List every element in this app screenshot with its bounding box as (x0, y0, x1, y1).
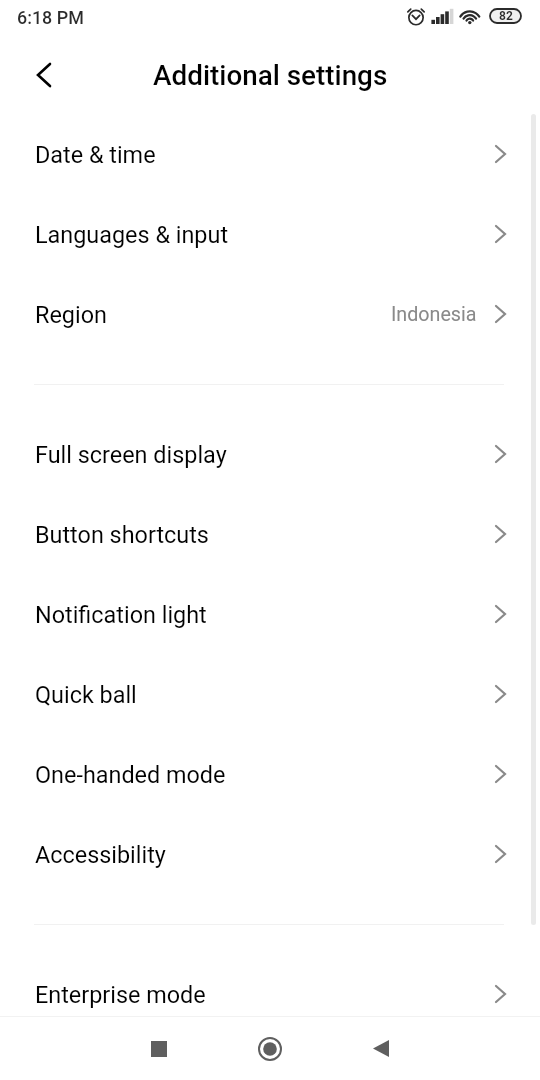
button[interactable]: One-handed mode (0, 734, 540, 814)
button[interactable]: Recents (103, 1017, 215, 1080)
staticText: Notification light (35, 601, 207, 628)
button[interactable]: Back (325, 1017, 437, 1080)
staticText: Additional settings (153, 59, 388, 92)
staticText: Button shortcuts (35, 521, 209, 548)
button[interactable]: Home (215, 1017, 325, 1080)
staticText: Full screen display (35, 441, 227, 468)
staticText: Quick ball (35, 681, 137, 708)
staticText: One-handed mode (35, 761, 226, 788)
button[interactable]: Date & time (0, 114, 540, 194)
button[interactable]: Notification light (0, 574, 540, 654)
staticText: Indonesia (391, 303, 477, 326)
button[interactable]: Accessibility (0, 814, 540, 894)
staticText: 6:18 PM (17, 7, 84, 28)
button[interactable]: Region (0, 274, 540, 354)
button[interactable]: Back (16, 47, 72, 103)
staticText: 82 (499, 9, 513, 23)
staticText: Region (35, 301, 107, 328)
staticText: Accessibility (35, 841, 166, 868)
button[interactable]: Enterprise mode (0, 954, 540, 1020)
button[interactable]: Full screen display (0, 414, 540, 494)
button[interactable]: Languages & input (0, 194, 540, 274)
staticText: Date & time (35, 141, 156, 168)
staticText: Languages & input (35, 221, 229, 248)
staticText: Enterprise mode (35, 981, 206, 1008)
button[interactable]: Quick ball (0, 654, 540, 734)
button[interactable]: Button shortcuts (0, 494, 540, 574)
